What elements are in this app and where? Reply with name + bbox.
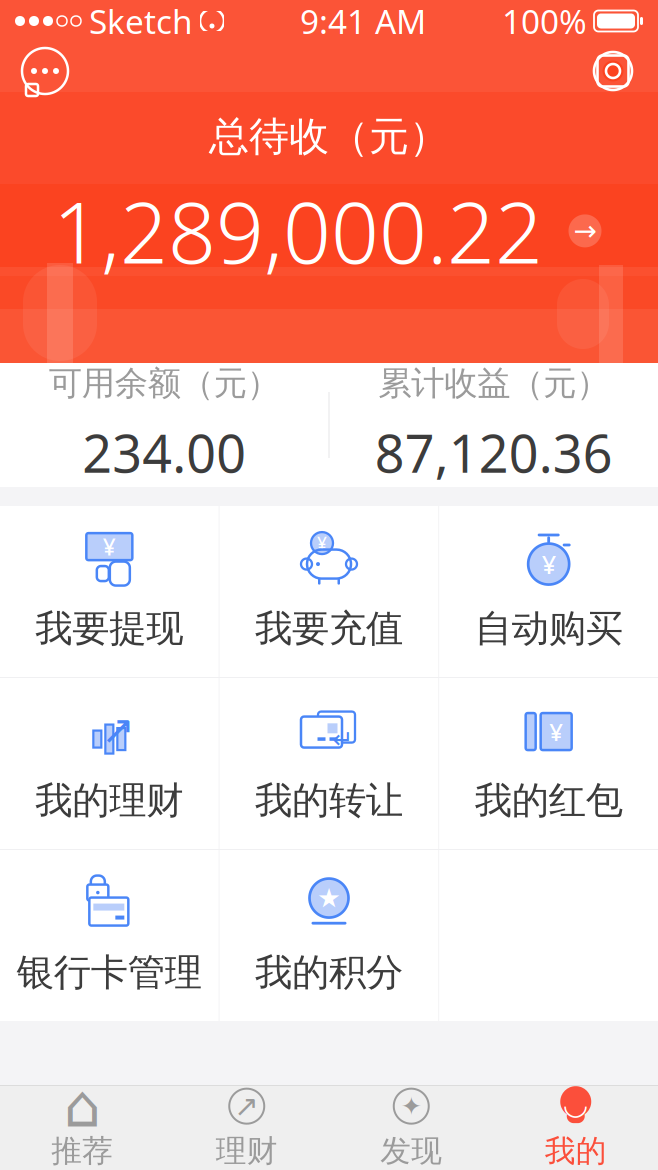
staticText: ◡ xyxy=(564,1087,587,1121)
staticText: ↵ xyxy=(332,725,353,754)
button[interactable]: ↵ xyxy=(220,678,438,849)
staticText: ¥ xyxy=(317,532,327,555)
staticText: 我的红包 xyxy=(475,778,623,823)
button[interactable]: ◡ xyxy=(493,1086,658,1170)
button[interactable]: ¥ xyxy=(439,678,658,849)
button[interactable]: Settings xyxy=(584,42,642,100)
button[interactable]: ↗ xyxy=(164,1086,329,1170)
staticText: 87,120.36 xyxy=(375,418,613,487)
staticText: 9:41 AM xyxy=(300,0,426,43)
staticText: 自动购买 xyxy=(475,606,623,651)
staticText: ¥ xyxy=(542,547,556,581)
staticText: ✦ xyxy=(401,1092,422,1121)
button[interactable]: ¥ xyxy=(439,506,658,677)
staticText: Sketch xyxy=(89,0,193,43)
staticText: ★ xyxy=(317,883,341,913)
button[interactable]: 银行卡管理 xyxy=(0,850,219,1021)
staticText: 可用余额（元） xyxy=(49,363,280,404)
staticText: 银行卡管理 xyxy=(17,950,202,995)
staticText: ¥ xyxy=(549,716,563,747)
staticText: 发现 xyxy=(380,1132,442,1170)
button[interactable]: ↗ xyxy=(0,678,219,849)
staticText: 总待收（元） xyxy=(209,112,449,161)
staticText: 我的积分 xyxy=(255,950,403,995)
button[interactable]: ¥ xyxy=(220,506,438,677)
staticText: 我要充值 xyxy=(255,606,403,651)
button[interactable]: 可用余额（元） xyxy=(0,363,328,487)
staticText: 234.00 xyxy=(82,418,246,487)
staticText: 推荐 xyxy=(51,1132,113,1170)
staticText: ¥ xyxy=(103,532,116,562)
button[interactable]: ¥ xyxy=(0,506,219,677)
staticText: 累计收益（元） xyxy=(378,363,609,404)
button[interactable]: Messages xyxy=(16,42,74,100)
staticText: 我的 xyxy=(545,1132,607,1170)
button[interactable]: Balance details xyxy=(565,211,605,251)
staticText: 我的理财 xyxy=(35,778,183,823)
button[interactable]: 累计收益（元） xyxy=(329,363,658,487)
staticText: 我要提现 xyxy=(35,606,183,651)
staticText: 100% xyxy=(502,0,587,43)
staticText: → xyxy=(573,215,596,247)
staticText: ↗ xyxy=(101,707,135,752)
button[interactable]: ★ xyxy=(220,850,438,1021)
staticText: ↗ xyxy=(234,1089,259,1123)
staticText: ⌂ xyxy=(64,1073,101,1139)
button[interactable]: ✦ xyxy=(329,1086,493,1170)
staticText: 理财 xyxy=(216,1132,278,1170)
staticText: 我的转让 xyxy=(255,778,403,823)
staticText: 1,289,000.22 xyxy=(53,175,543,287)
button[interactable]: ⌂ xyxy=(0,1086,164,1170)
